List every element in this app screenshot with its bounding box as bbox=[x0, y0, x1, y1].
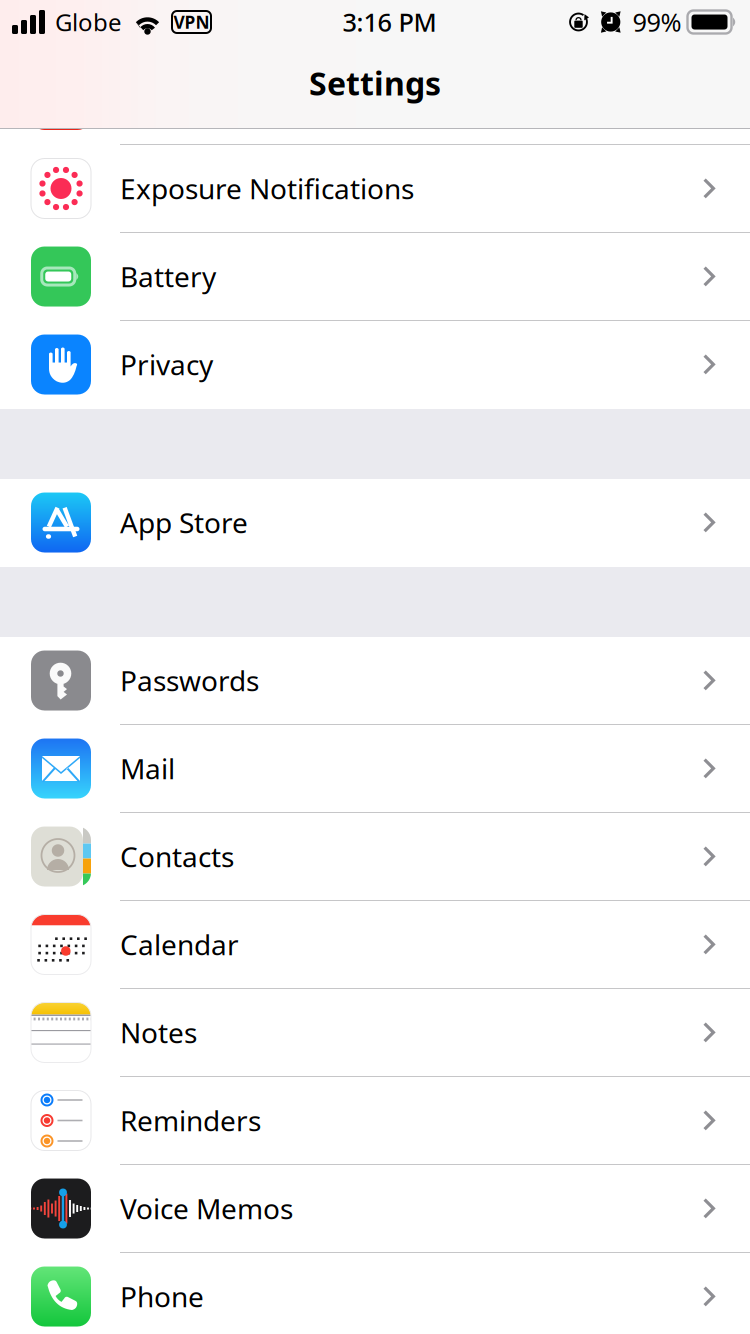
staticText: App Store bbox=[120, 504, 248, 541]
button[interactable]: Passwords bbox=[0, 637, 750, 725]
button[interactable]: Screen Time bbox=[0, 0, 750, 145]
staticText: Calendar bbox=[120, 926, 239, 963]
button[interactable]: Calendar bbox=[0, 901, 750, 989]
staticText: Contacts bbox=[120, 838, 234, 875]
button[interactable]: Privacy bbox=[0, 321, 750, 409]
button[interactable]: Voice Memos bbox=[0, 1165, 750, 1253]
staticText: Notes bbox=[120, 1014, 197, 1051]
staticText: 3:16 PM bbox=[342, 5, 436, 39]
button[interactable]: Phone bbox=[0, 1253, 750, 1334]
button[interactable]: Mail bbox=[0, 725, 750, 813]
button[interactable]: Notes bbox=[0, 989, 750, 1077]
staticText: Settings bbox=[309, 62, 441, 104]
staticText: VPN bbox=[173, 10, 209, 33]
staticText: Phone bbox=[120, 1278, 204, 1315]
staticText: Exposure Notifications bbox=[120, 170, 414, 207]
button[interactable]: Contacts bbox=[0, 813, 750, 901]
staticText: Mail bbox=[120, 750, 175, 787]
button[interactable]: Battery bbox=[0, 233, 750, 321]
staticText: Globe bbox=[55, 6, 122, 38]
staticText: Voice Memos bbox=[120, 1190, 293, 1227]
staticText: Passwords bbox=[120, 662, 259, 699]
button[interactable]: App Store bbox=[0, 479, 750, 567]
button[interactable]: Exposure Notifications bbox=[0, 145, 750, 233]
button[interactable]: Reminders bbox=[0, 1077, 750, 1165]
staticText: Reminders bbox=[120, 1102, 261, 1139]
staticText: 99% bbox=[632, 5, 681, 39]
staticText: Battery bbox=[120, 258, 216, 295]
staticText: Privacy bbox=[120, 346, 213, 383]
